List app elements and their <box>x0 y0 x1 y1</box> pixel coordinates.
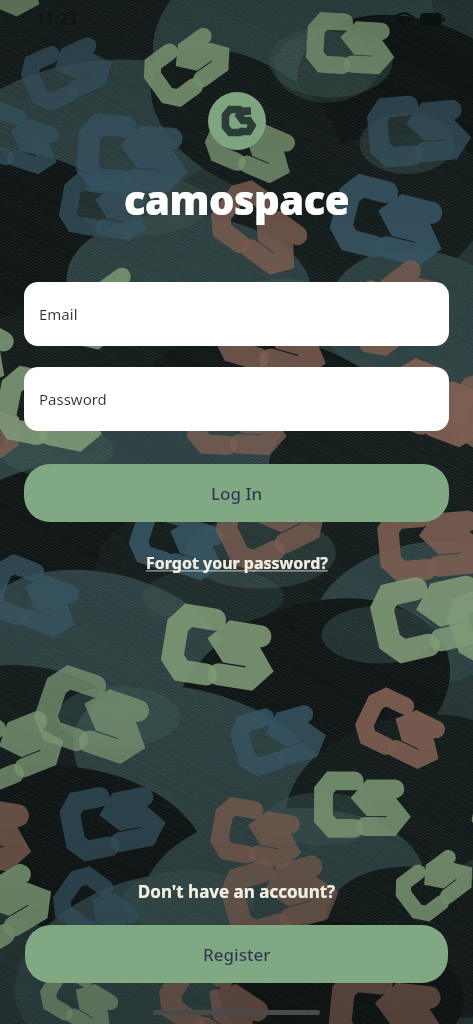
staticText: 11:23 <box>36 8 78 30</box>
staticText: Register <box>203 943 271 966</box>
staticText: camospace <box>0 172 473 226</box>
button[interactable]: Email <box>24 282 449 346</box>
staticText: Don't have an account? <box>0 880 473 903</box>
button[interactable]: Register <box>25 925 448 983</box>
staticText: Log In <box>211 482 263 505</box>
button[interactable]: Forgot your password? <box>136 548 338 578</box>
staticText: Forgot your password? <box>146 552 328 574</box>
button[interactable]: Password <box>24 367 449 431</box>
staticText: Email <box>39 304 78 324</box>
staticText: Password <box>39 389 107 409</box>
button[interactable]: Log In <box>24 464 449 522</box>
